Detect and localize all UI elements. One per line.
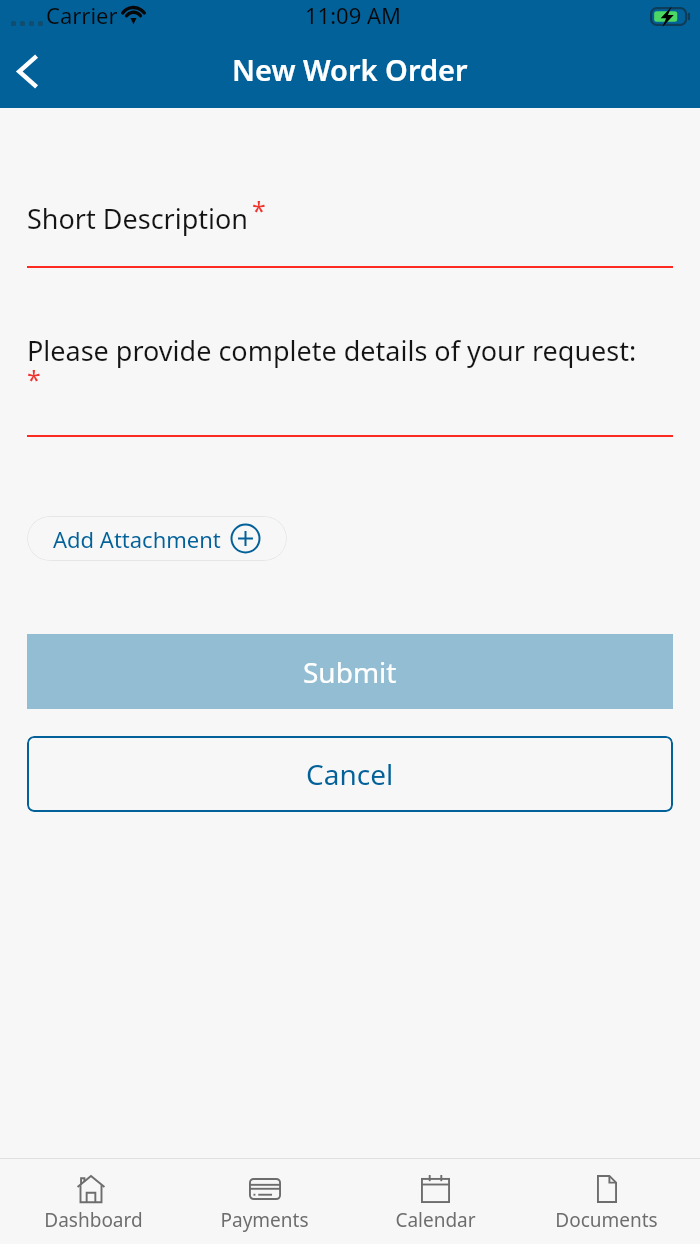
- button[interactable]: Back: [0, 45, 54, 99]
- staticText: Add Attachment: [53, 524, 221, 554]
- button[interactable]: Documents: [521, 1159, 692, 1244]
- button[interactable]: Dashboard: [8, 1159, 179, 1244]
- button[interactable]: Payments: [179, 1159, 350, 1244]
- staticText: 11:09 AM: [305, 0, 401, 30]
- button[interactable]: Add Attachment: [27, 516, 287, 561]
- staticText: Carrier: [46, 0, 118, 30]
- staticText: Please provide complete details of your …: [27, 332, 637, 369]
- staticText: *: [252, 193, 266, 227]
- staticText: Payments: [220, 1207, 309, 1233]
- staticText: Submit: [303, 653, 397, 691]
- staticText: Calendar: [395, 1207, 476, 1233]
- button[interactable]: Submit: [27, 634, 673, 709]
- staticText: Documents: [555, 1207, 658, 1233]
- button[interactable]: Cancel: [27, 736, 673, 812]
- staticText: Cancel: [306, 755, 394, 793]
- staticText: Short Description: [27, 200, 249, 237]
- staticText: *: [27, 362, 41, 396]
- staticText: New Work Order: [232, 50, 468, 89]
- button[interactable]: Calendar: [350, 1159, 521, 1244]
- staticText: Dashboard: [44, 1207, 143, 1233]
